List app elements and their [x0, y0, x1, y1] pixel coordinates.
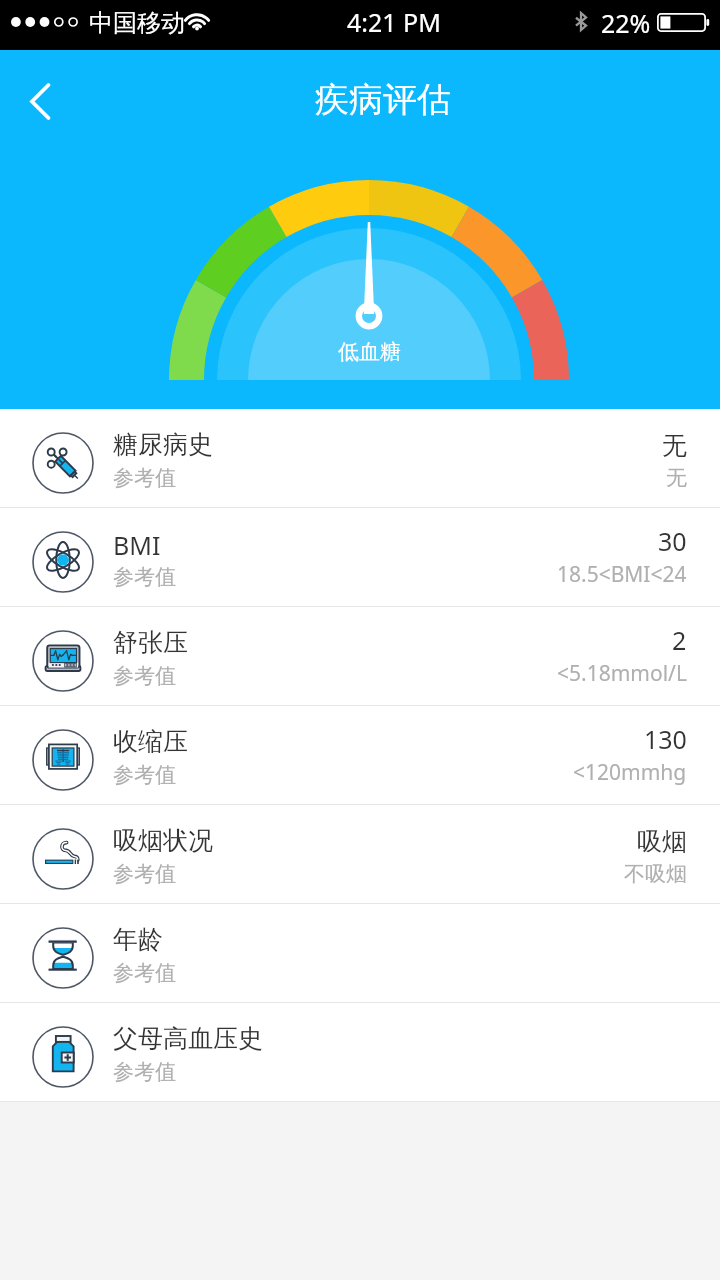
staticText: 130: [644, 722, 687, 756]
button[interactable]: BMI: [0, 508, 720, 606]
button[interactable]: 收缩压: [0, 706, 720, 804]
button[interactable]: 父母高血压史: [0, 1003, 720, 1101]
staticText: 不吸烟: [624, 861, 687, 887]
staticText: 2: [672, 623, 687, 657]
staticText: 糖尿病史: [113, 429, 213, 460]
staticText: 年龄: [113, 924, 163, 955]
staticText: 中国移动: [89, 8, 185, 38]
staticText: 疾病评估: [315, 78, 451, 121]
staticText: 吸烟状况: [113, 825, 213, 856]
staticText: 舒张压: [113, 627, 188, 658]
staticText: 22%: [601, 6, 651, 40]
staticText: 参考值: [113, 861, 176, 887]
staticText: 4:21 PM: [347, 5, 441, 39]
button[interactable]: 吸烟状况: [0, 805, 720, 903]
button[interactable]: 舒张压: [0, 607, 720, 705]
staticText: 18.5<BMI<24: [557, 560, 687, 589]
staticText: <5.18mmol/L: [557, 659, 687, 688]
staticText: 低血糖: [338, 339, 401, 365]
staticText: BMI: [113, 528, 161, 562]
button[interactable]: 年龄: [0, 904, 720, 1002]
staticText: 收缩压: [113, 726, 188, 757]
staticText: 参考值: [113, 465, 176, 491]
staticText: 参考值: [113, 762, 176, 788]
staticText: 参考值: [113, 1059, 176, 1085]
staticText: 无: [666, 465, 687, 491]
staticText: <120mmhg: [573, 758, 687, 787]
button[interactable]: Back: [0, 50, 84, 150]
staticText: 30: [658, 524, 687, 558]
staticText: 参考值: [113, 960, 176, 986]
staticText: 吸烟: [637, 826, 687, 857]
staticText: 参考值: [113, 663, 176, 689]
staticText: 父母高血压史: [113, 1023, 263, 1054]
button[interactable]: 糖尿病史: [0, 409, 720, 507]
staticText: 参考值: [113, 564, 176, 590]
staticText: 无: [662, 430, 687, 461]
